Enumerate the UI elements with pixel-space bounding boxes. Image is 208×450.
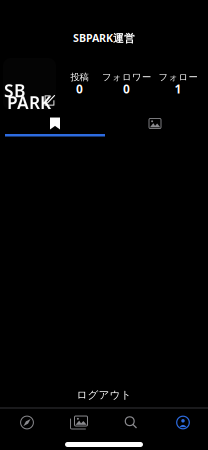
button[interactable]: Photos <box>105 115 205 136</box>
staticText: 投稿 <box>70 71 88 83</box>
button[interactable]: フォロー <box>150 67 206 101</box>
button[interactable]: Discover <box>1 409 53 436</box>
staticText: フォロー <box>158 71 197 83</box>
staticText: フォロワー <box>102 71 151 83</box>
button[interactable]: Edit profile photo <box>3 58 56 110</box>
button[interactable]: ログアウト <box>0 386 208 404</box>
staticText: PARK <box>7 91 51 114</box>
button[interactable]: 投稿 <box>56 67 103 101</box>
button[interactable]: フォロワー <box>103 67 150 101</box>
staticText: 1 <box>174 81 181 97</box>
staticText: ログアウト <box>76 388 131 401</box>
staticText: SB <box>4 79 25 102</box>
staticText: 0 <box>123 81 130 97</box>
staticText: SBPARK運営 <box>73 31 135 45</box>
button[interactable]: Saved posts <box>5 115 105 136</box>
button[interactable]: Photos <box>53 409 105 436</box>
staticText: 0 <box>76 81 83 97</box>
button[interactable]: Profile <box>157 409 208 436</box>
button[interactable]: Search <box>105 409 157 436</box>
